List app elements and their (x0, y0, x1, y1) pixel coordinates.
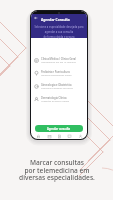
staticText: Avaliação de pele e cabelo (41, 100, 70, 103)
staticText: Atendimento em até 15 minutos (41, 61, 76, 64)
button[interactable]: Perfil (77, 133, 83, 139)
button[interactable]: Dermatologia Clínica (31, 93, 87, 106)
staticText: Agendar consulta (47, 127, 71, 131)
button[interactable]: Início (35, 133, 41, 139)
staticText: Clínica Médica / Clínico Geral (41, 57, 76, 61)
staticText: Selecione a especialidade desejada para … (33, 25, 85, 38)
staticText: Ginecologia e Obstetrícia (41, 83, 72, 87)
button[interactable]: Agendar consulta (35, 125, 83, 132)
staticText: Agendar Consulta (41, 17, 70, 21)
button[interactable]: Pediatria e Puericultura (31, 67, 87, 80)
staticText: Dermatologia Clínica (41, 96, 67, 100)
button[interactable]: Voltar (34, 16, 38, 20)
staticText: Pediatria e Puericultura (41, 70, 70, 74)
staticText: Médicos especialistas online (41, 74, 72, 77)
staticText: Marcar consultas por telemedicina em div… (19, 158, 95, 182)
button[interactable]: Exames (56, 133, 62, 139)
staticText: Consultas e exames de rotina (41, 87, 73, 90)
button[interactable]: Consultas (46, 133, 52, 139)
button[interactable]: Clínica Médica / Clínico Geral (31, 54, 87, 67)
button[interactable]: Chat (66, 133, 72, 139)
button[interactable]: Ginecologia e Obstetrícia (31, 80, 87, 93)
